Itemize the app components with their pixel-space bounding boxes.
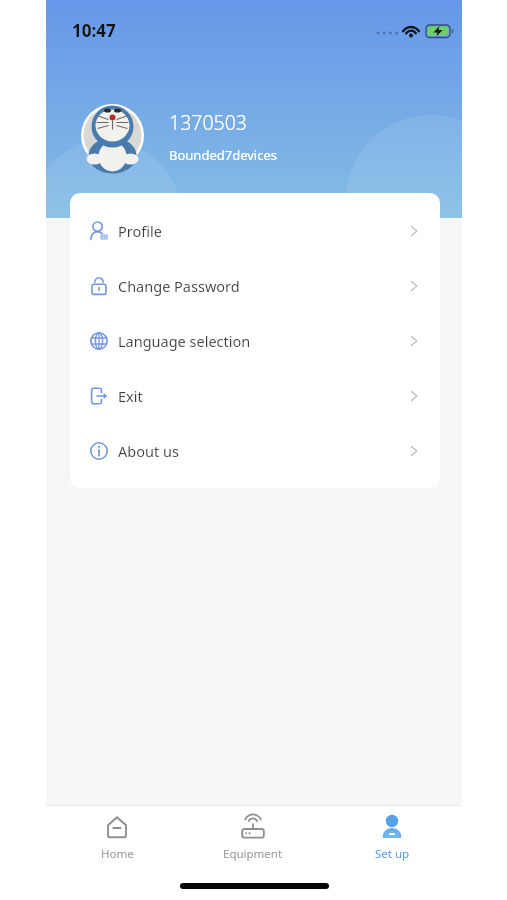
button[interactable]: Home — [72, 813, 162, 862]
staticText: Set up — [375, 846, 410, 862]
staticText: Change Password — [118, 276, 240, 296]
staticText: Profile — [118, 221, 162, 241]
button[interactable]: Equipment — [208, 813, 298, 862]
button[interactable]: Language selection — [70, 313, 440, 368]
staticText: Exit — [118, 386, 143, 406]
button[interactable]: Profile — [70, 203, 440, 258]
button[interactable]: Exit — [70, 368, 440, 423]
button[interactable]: Set up — [347, 813, 437, 862]
button[interactable]: About us — [70, 423, 440, 478]
button[interactable]: Change Password — [70, 258, 440, 313]
staticText: Home — [101, 846, 134, 862]
staticText: Bounded7devices — [169, 146, 277, 164]
staticText: Language selection — [118, 331, 251, 351]
staticText: About us — [118, 441, 179, 461]
staticText: 10:47 — [72, 19, 116, 42]
staticText: Equipment — [223, 846, 283, 862]
staticText: 1370503 — [169, 109, 247, 136]
